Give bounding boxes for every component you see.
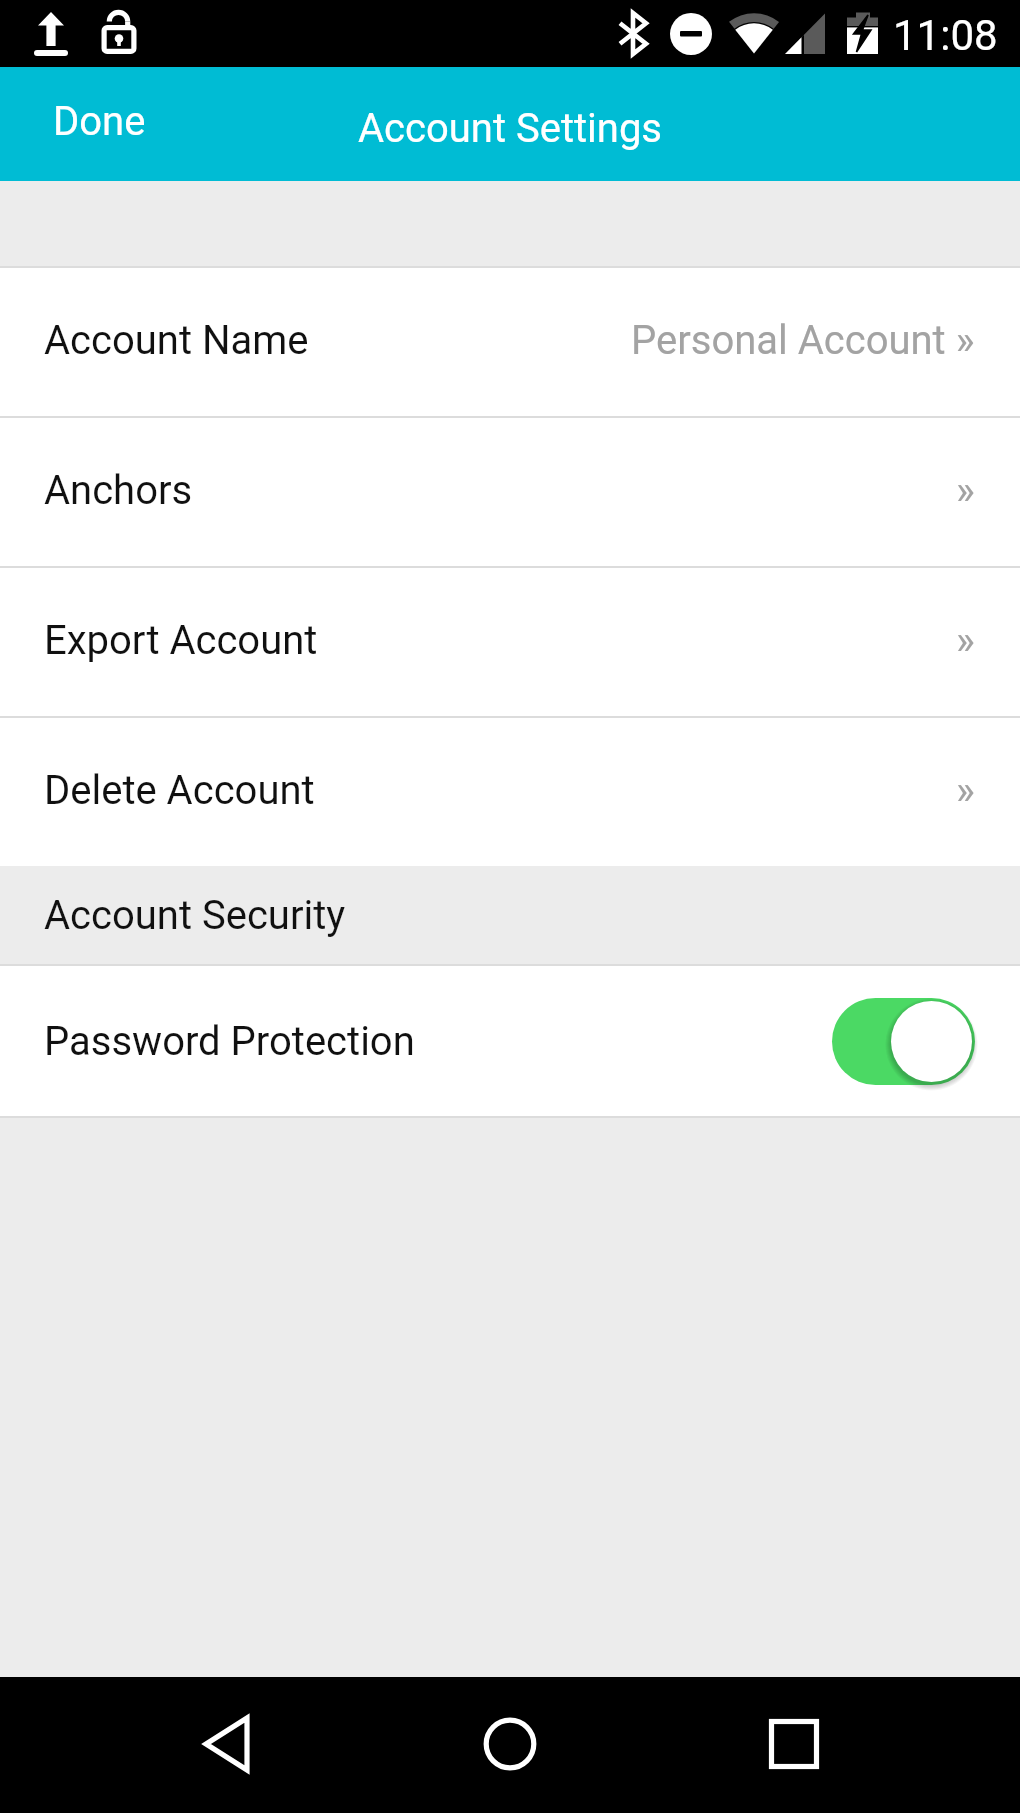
staticText: Export Account (44, 617, 318, 664)
staticText: Anchors (44, 467, 193, 514)
button[interactable]: Delete Account (0, 718, 1020, 866)
staticText: Personal Account » (631, 317, 975, 364)
staticText: Delete Account (44, 767, 315, 814)
button[interactable]: Back (0, 1677, 340, 1813)
button[interactable]: Export Account (0, 568, 1020, 716)
button[interactable]: Password protection toggle (832, 998, 975, 1085)
staticText: 11:08 (893, 11, 998, 60)
button[interactable]: Home (340, 1677, 680, 1813)
button[interactable]: Done (0, 67, 306, 181)
button[interactable]: Anchors (0, 418, 1020, 566)
button[interactable]: Recent apps (680, 1677, 1020, 1813)
staticText: Done (53, 98, 146, 145)
staticText: Account Name (44, 317, 309, 364)
button[interactable]: Account Name (0, 268, 1020, 416)
staticText: » (956, 617, 975, 664)
staticText: » (956, 467, 975, 514)
staticText: Account Settings (358, 105, 662, 152)
button[interactable]: Password Protection (0, 966, 1020, 1116)
staticText: Password Protection (44, 1018, 415, 1065)
staticText: » (956, 767, 975, 814)
staticText: Account Security (44, 892, 346, 939)
